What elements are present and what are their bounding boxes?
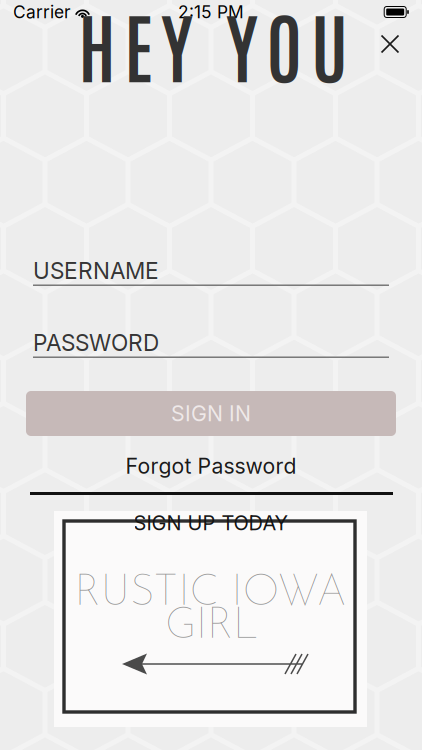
button[interactable]: RUSTIC IOWA (54, 511, 367, 727)
staticText: PASSWORD (33, 329, 159, 356)
staticText: RUSTIC IOWA (74, 573, 346, 615)
staticText: 2:15 PM (178, 1, 244, 22)
staticText: SIGN IN (171, 401, 251, 426)
button[interactable]: Close (367, 21, 413, 67)
staticText: GIRL (165, 606, 258, 648)
button[interactable]: SIGN IN (26, 391, 396, 436)
button[interactable]: Forgot Password (121, 451, 301, 481)
staticText: USERNAME (33, 257, 159, 284)
staticText: HEY YOU (78, 0, 348, 93)
staticText: SIGN UP TODAY (133, 511, 288, 535)
staticText: Carrier (13, 1, 71, 22)
staticText: Forgot Password (125, 453, 296, 479)
